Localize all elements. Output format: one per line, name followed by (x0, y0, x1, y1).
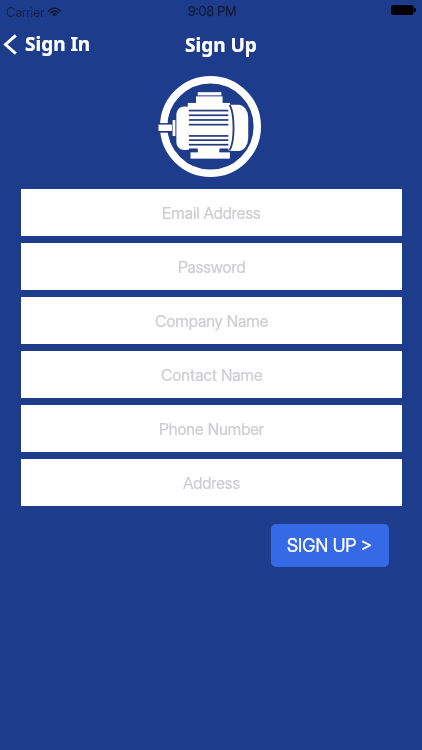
button[interactable]: Sign In (0, 29, 101, 59)
staticText: Phone Number (159, 419, 264, 438)
staticText: Carrier (6, 4, 45, 20)
button[interactable]: Phone Number (21, 405, 402, 452)
staticText: Company Name (155, 311, 269, 330)
staticText: Address (183, 473, 240, 492)
staticText: Email Address (162, 203, 261, 222)
button[interactable]: Contact Name (21, 351, 402, 398)
button[interactable]: Password (21, 243, 402, 290)
button[interactable]: Email Address (21, 189, 402, 236)
staticText: Contact Name (161, 365, 263, 384)
staticText: Password (178, 257, 246, 276)
button[interactable]: Company Name (21, 297, 402, 344)
staticText: Sign Up (185, 32, 257, 58)
staticText: 9:08 PM (188, 3, 237, 19)
staticText: Sign In (25, 31, 91, 57)
button[interactable]: Address (21, 459, 402, 506)
button[interactable]: SIGN UP > (271, 524, 389, 567)
staticText: SIGN UP > (287, 535, 373, 557)
